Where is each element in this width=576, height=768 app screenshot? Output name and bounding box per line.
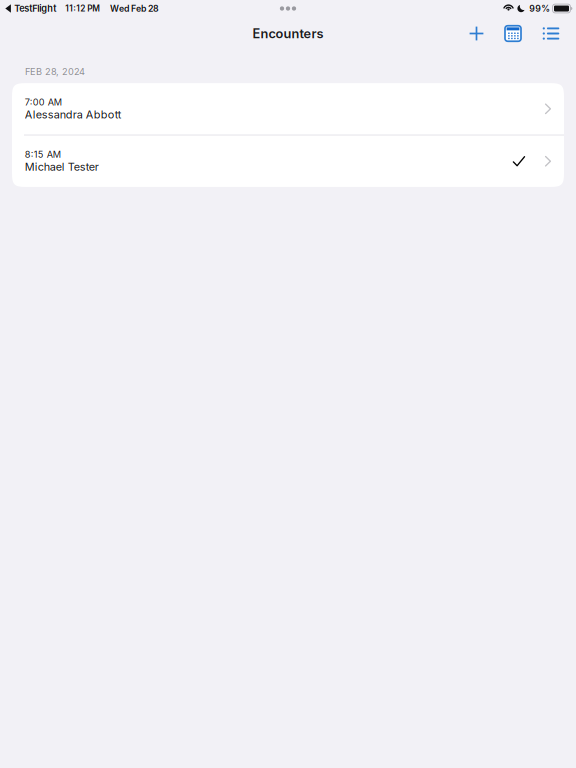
staticText: Alessandra Abbott [25, 108, 122, 121]
staticText: 11:12 PM [65, 3, 100, 14]
button[interactable]: Calendar view [492, 18, 534, 48]
button[interactable]: 8:15 AM [12, 135, 564, 187]
staticText: 8:15 AM [25, 149, 61, 160]
staticText: TestFlight [14, 3, 56, 14]
staticText: 7:00 AM [25, 97, 62, 108]
staticText: Michael Tester [25, 160, 99, 173]
button[interactable]: 7:00 AM [12, 83, 564, 134]
button[interactable]: List view [534, 18, 568, 48]
staticText: 99% [529, 3, 550, 14]
staticText: Encounters [252, 26, 323, 41]
staticText: Wed Feb 28 [110, 3, 159, 14]
staticText: FEB 28, 2024 [25, 66, 85, 77]
button[interactable]: Add encounter [461, 18, 492, 48]
